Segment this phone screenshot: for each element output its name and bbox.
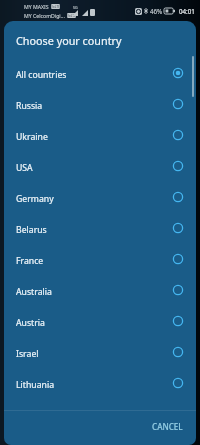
button[interactable]: Russia	[4, 88, 196, 119]
button[interactable]: Ukraine	[4, 119, 196, 150]
button[interactable]: Australia	[4, 274, 196, 305]
staticText: Belarus	[16, 224, 172, 236]
staticText: All countries	[16, 69, 172, 81]
staticText: MY MAXIS	[24, 3, 49, 10]
staticText: 04:01	[179, 7, 195, 15]
staticText: USA	[16, 162, 172, 174]
staticText: Israel	[16, 348, 172, 360]
staticText: VoLTE	[67, 14, 76, 18]
staticText: Ukraine	[16, 131, 172, 143]
button[interactable]: Lithuania	[4, 367, 196, 398]
staticText: CANCEL	[152, 421, 183, 432]
staticText: MY CelcomDigi...	[24, 12, 65, 19]
button[interactable]: All countries	[4, 57, 196, 88]
button[interactable]: Israel	[4, 336, 196, 367]
staticText: Germany	[16, 193, 172, 205]
staticText: Choose your country	[16, 33, 122, 48]
staticText: Russia	[16, 100, 172, 112]
button[interactable]: Germany	[4, 181, 196, 212]
staticText: Australia	[16, 286, 172, 298]
button[interactable]: Austria	[4, 305, 196, 336]
staticText: France	[16, 255, 172, 267]
button[interactable]: Belarus	[4, 212, 196, 243]
staticText: 46%	[150, 7, 163, 15]
staticText: Austria	[16, 317, 172, 329]
button[interactable]: France	[4, 243, 196, 274]
staticText: 5G	[73, 5, 78, 10]
button[interactable]: USA	[4, 150, 196, 181]
staticText: Lithuania	[16, 379, 172, 391]
staticText: VoLTE	[51, 5, 60, 9]
button[interactable]: CANCEL	[147, 417, 188, 436]
